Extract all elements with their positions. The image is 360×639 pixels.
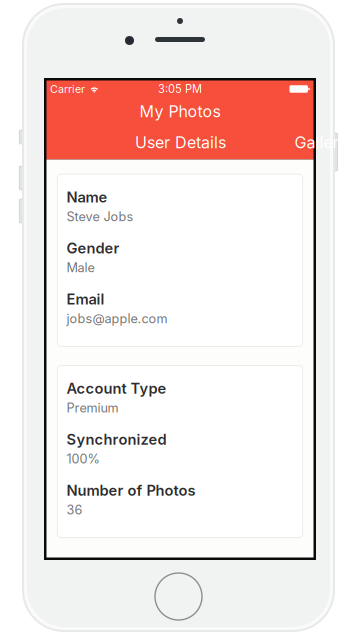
staticText: Synchronized (66, 430, 166, 448)
staticText: User Details (135, 133, 226, 152)
button[interactable]: Gallery (259, 125, 360, 159)
staticText: My Photos (139, 102, 220, 121)
button[interactable]: User Details (101, 125, 259, 159)
staticText: 100% (66, 451, 99, 466)
staticText: jobs@apple.com (66, 311, 167, 326)
staticText: Number of Photos (66, 482, 195, 499)
staticText: Account Type (66, 379, 166, 397)
staticText: Gender (66, 239, 119, 257)
staticText: Carrier (50, 82, 85, 95)
staticText: Premium (66, 400, 118, 415)
staticText: 36 (66, 502, 82, 518)
staticText: Steve Jobs (66, 209, 133, 224)
staticText: Male (66, 260, 94, 275)
staticText: Gallery (294, 133, 347, 152)
staticText: Name (66, 188, 107, 206)
staticText: 3:05 PM (158, 82, 202, 96)
staticText: Email (66, 290, 104, 308)
